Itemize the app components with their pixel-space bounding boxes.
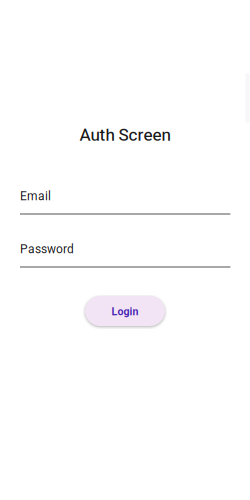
button[interactable]: Email: [20, 189, 230, 227]
staticText: Auth Screen: [79, 125, 170, 145]
button[interactable]: Login: [85, 296, 165, 326]
staticText: Email: [20, 189, 51, 203]
staticText: Login: [111, 305, 138, 318]
staticText: Password: [20, 242, 74, 256]
button[interactable]: Password: [20, 242, 230, 280]
